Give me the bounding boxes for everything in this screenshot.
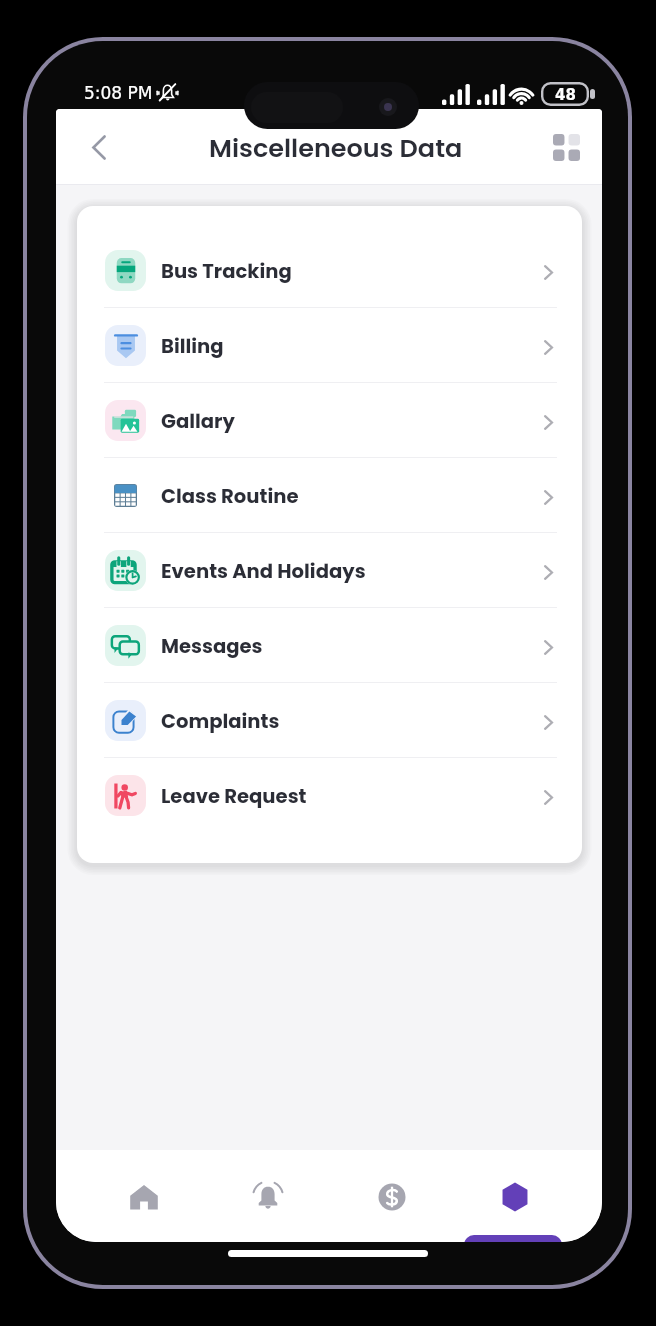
button[interactable]: Payments <box>330 1150 454 1242</box>
button[interactable]: Home <box>82 1150 206 1242</box>
button[interactable]: Billing <box>77 308 582 383</box>
staticText: Events And Holidays <box>161 557 366 584</box>
button[interactable]: Gallary <box>77 383 582 458</box>
button[interactable]: More <box>454 1150 576 1242</box>
staticText: Leave Request <box>161 782 307 809</box>
button[interactable]: Complaints <box>77 683 582 758</box>
button[interactable]: Events And Holidays <box>77 533 582 608</box>
staticText: Bus Tracking <box>161 257 292 284</box>
staticText: Gallary <box>161 407 235 434</box>
button[interactable]: Notifications <box>206 1150 330 1242</box>
staticText: 5:08 PM <box>84 83 153 103</box>
staticText: Messages <box>161 632 263 659</box>
staticText: Complaints <box>161 707 280 734</box>
button[interactable]: Messages <box>77 608 582 683</box>
staticText: Class Routine <box>161 482 299 509</box>
button[interactable]: Leave Request <box>77 758 582 833</box>
staticText: Miscelleneous Data <box>209 130 463 166</box>
button[interactable]: Bus Tracking <box>77 233 582 308</box>
staticText: 48 <box>555 86 576 103</box>
button[interactable]: Class Routine <box>77 458 582 533</box>
button[interactable]: Apps grid <box>540 121 592 173</box>
staticText: Billing <box>161 332 224 359</box>
button[interactable]: Back <box>73 121 125 173</box>
